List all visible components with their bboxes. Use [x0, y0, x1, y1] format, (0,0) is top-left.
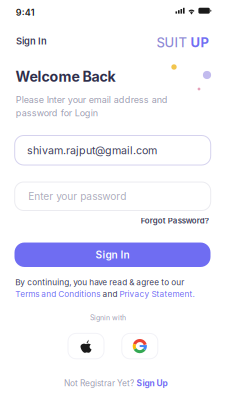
button[interactable]: Forgot Password?	[138, 213, 212, 228]
staticText: Terms and Conditions	[15, 289, 100, 299]
staticText: By continuing, you have read & agree to …	[15, 277, 184, 287]
button[interactable]: Not Registrar Yet?	[61, 375, 170, 391]
staticText: Not Registrar Yet?	[64, 378, 134, 388]
staticText: Sign Up	[136, 378, 167, 388]
staticText: Please Inter your email address and	[16, 94, 168, 105]
staticText: Forgot Password?	[141, 216, 209, 225]
button[interactable]: SUIT	[153, 31, 212, 54]
staticText: Welcome Back	[15, 68, 115, 85]
button[interactable]: Sign in with Google	[122, 333, 158, 359]
button[interactable]: Sign In	[14, 242, 210, 267]
staticText: Sign In	[95, 249, 129, 261]
staticText: 9:41	[16, 7, 35, 18]
staticText: SUIT	[157, 35, 188, 50]
staticText: Sign In	[16, 35, 47, 47]
button[interactable]: Terms and Conditions	[15, 289, 100, 299]
staticText: shivam.rajput@gmail.com	[27, 144, 157, 157]
staticText: UP	[190, 35, 208, 50]
staticText: Enter your password	[28, 190, 126, 202]
staticText: Privacy Statement.	[119, 289, 194, 299]
staticText: and	[102, 289, 117, 299]
button[interactable]: Sign in with Apple	[68, 333, 104, 359]
button[interactable]: Privacy Statement.	[119, 289, 194, 299]
staticText: password for Login	[16, 107, 98, 118]
button[interactable]: Sign In	[12, 31, 51, 51]
staticText: Signin with	[90, 313, 126, 322]
